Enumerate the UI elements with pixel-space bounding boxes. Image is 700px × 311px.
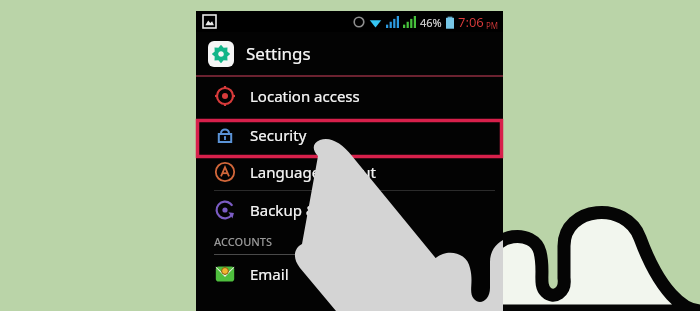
staticText: 46%	[420, 15, 442, 30]
button[interactable]: Email	[196, 255, 503, 292]
button[interactable]: Security	[196, 116, 503, 153]
staticText: ACCOUNTS	[214, 234, 273, 249]
staticText: PM	[486, 20, 499, 31]
staticText: Security	[250, 125, 307, 145]
button[interactable]	[196, 119, 503, 158]
button[interactable]: Location access	[196, 77, 503, 114]
staticText: 7:06	[458, 13, 484, 31]
button[interactable]: Settings	[196, 32, 503, 75]
button[interactable]: Language & input	[196, 153, 503, 190]
staticText: Location access	[250, 86, 360, 106]
staticText: Language & input	[250, 162, 376, 182]
staticText: Email	[250, 264, 289, 284]
staticText: Settings	[246, 42, 311, 65]
button[interactable]: Backup & reset	[196, 191, 503, 228]
staticText: Backup & reset	[250, 200, 357, 220]
